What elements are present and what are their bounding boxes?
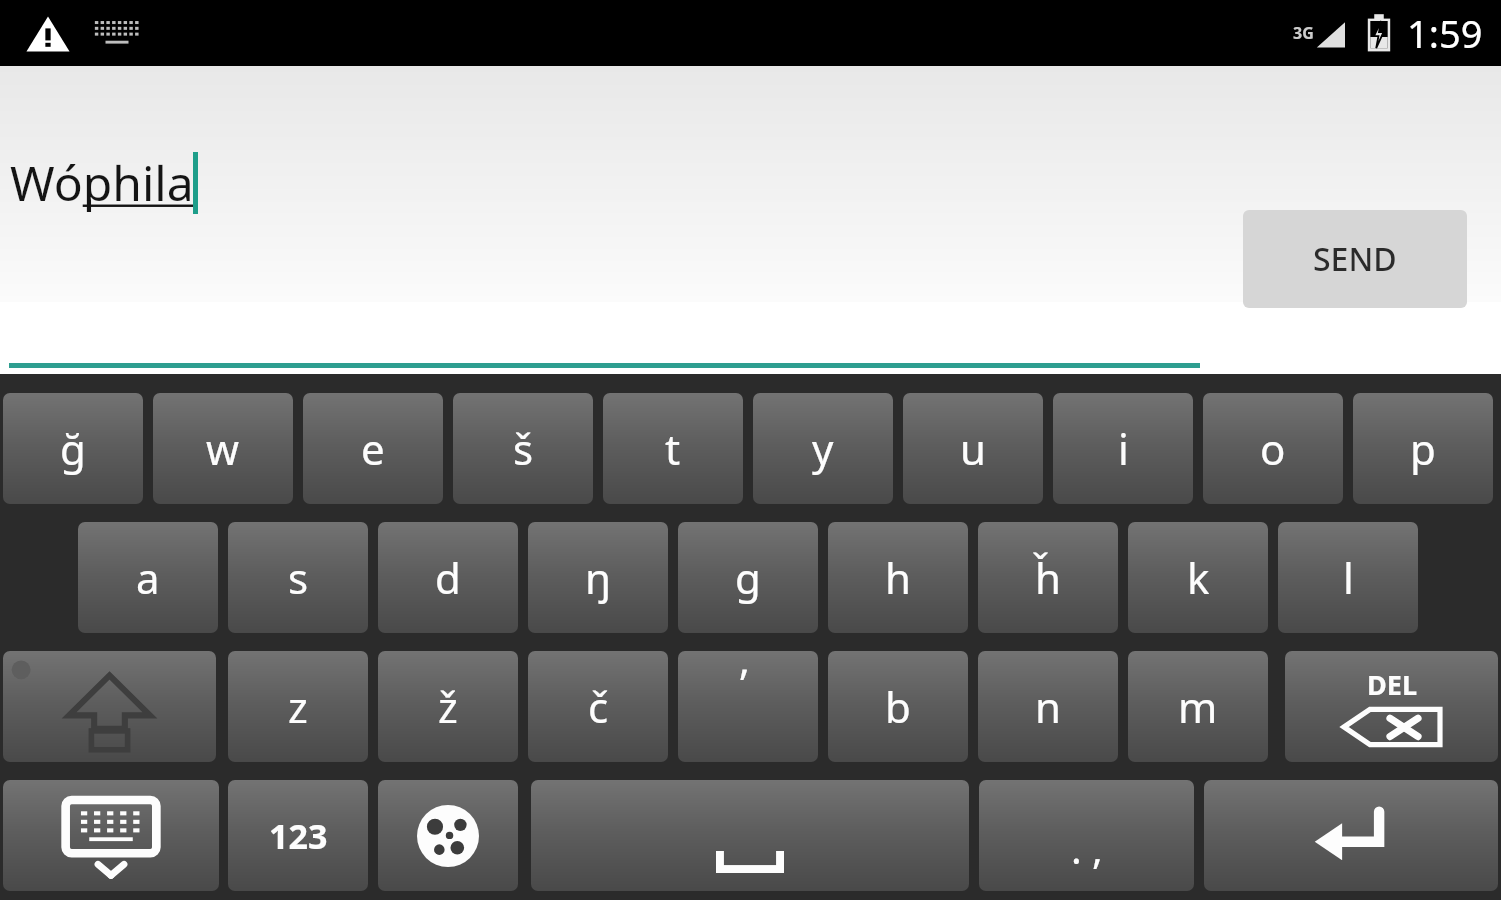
button[interactable]: ž xyxy=(378,651,518,762)
staticText: t xyxy=(665,420,681,477)
button[interactable]: p xyxy=(1353,393,1493,504)
staticText: s xyxy=(288,549,309,606)
button[interactable]: Delete xyxy=(1285,651,1498,762)
button[interactable]: t xyxy=(603,393,743,504)
staticText: Wóphila xyxy=(10,150,194,215)
staticText: a xyxy=(136,549,160,606)
staticText: w xyxy=(206,420,240,477)
staticText: e xyxy=(361,420,385,477)
button[interactable]: y xyxy=(753,393,893,504)
button[interactable]: i xyxy=(1053,393,1193,504)
button[interactable]: b xyxy=(828,651,968,762)
staticText: č xyxy=(588,678,609,735)
staticText: ğ xyxy=(60,420,86,477)
button[interactable]: n xyxy=(978,651,1118,762)
button[interactable]: SEND xyxy=(1243,210,1467,308)
button[interactable]: u xyxy=(903,393,1043,504)
button[interactable]: l xyxy=(1278,522,1418,633)
staticText: ž xyxy=(438,678,458,735)
staticText: z xyxy=(288,678,308,735)
button[interactable]: g xyxy=(678,522,818,633)
staticText: l xyxy=(1343,549,1354,606)
staticText: y xyxy=(812,420,834,477)
staticText: o xyxy=(1260,420,1286,477)
button[interactable]: a xyxy=(78,522,218,633)
button[interactable]: o xyxy=(1203,393,1343,504)
button[interactable]: ŋ xyxy=(528,522,668,633)
button[interactable]: k xyxy=(1128,522,1268,633)
staticText: š xyxy=(513,420,534,477)
staticText: 3G xyxy=(1293,22,1314,44)
button[interactable]: Period and comma xyxy=(979,780,1194,891)
button[interactable]: č xyxy=(528,651,668,762)
staticText: 1:59 xyxy=(1407,7,1483,59)
staticText: m xyxy=(1178,678,1218,735)
staticText: h xyxy=(885,549,911,606)
button[interactable]: e xyxy=(303,393,443,504)
button[interactable]: Change language xyxy=(378,780,518,891)
staticText: k xyxy=(1187,549,1210,606)
button[interactable]: m xyxy=(1128,651,1268,762)
button[interactable]: w xyxy=(153,393,293,504)
staticText: p xyxy=(1410,420,1436,477)
button[interactable]: s xyxy=(228,522,368,633)
button[interactable]: Apostrophe xyxy=(678,651,818,762)
button[interactable]: ȟ xyxy=(978,522,1118,633)
staticText: d xyxy=(435,549,461,606)
staticText: i xyxy=(1118,420,1129,477)
staticText: ŋ xyxy=(585,549,611,606)
button[interactable]: š xyxy=(453,393,593,504)
staticText: 123 xyxy=(269,813,328,859)
button[interactable]: 123 xyxy=(228,780,368,891)
button[interactable]: Space xyxy=(531,780,969,891)
staticText: b xyxy=(885,678,911,735)
button[interactable]: ğ xyxy=(3,393,143,504)
staticText: n xyxy=(1035,678,1061,735)
button[interactable]: Enter xyxy=(1204,780,1498,891)
button[interactable]: h xyxy=(828,522,968,633)
staticText: DEL xyxy=(1367,666,1417,703)
staticText: ȟ xyxy=(1035,549,1061,606)
button[interactable]: z xyxy=(228,651,368,762)
staticText: g xyxy=(735,549,761,606)
staticText: SEND xyxy=(1313,237,1397,281)
button[interactable]: Hide keyboard xyxy=(3,780,219,891)
button[interactable]: Shift xyxy=(3,651,216,762)
staticText: u xyxy=(960,420,986,477)
staticText: ʼ xyxy=(740,655,748,712)
button[interactable]: d xyxy=(378,522,518,633)
staticText: . , xyxy=(1071,821,1103,875)
